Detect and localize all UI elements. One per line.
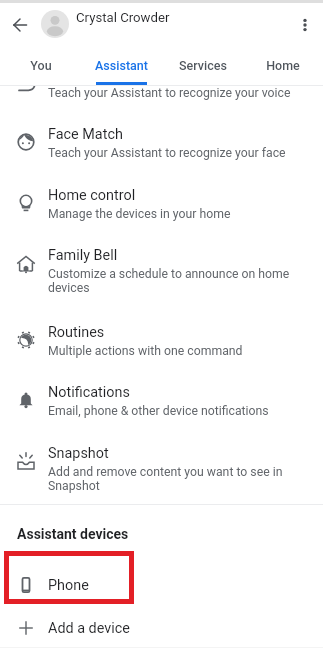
staticText: Notifications xyxy=(48,384,130,401)
staticText: Customize a schedule to announce on home… xyxy=(48,267,304,295)
button[interactable]: Add a device xyxy=(0,605,323,650)
button[interactable]: Snapshot xyxy=(0,435,323,497)
button[interactable]: Services xyxy=(162,41,243,86)
staticText: Home control xyxy=(48,187,136,204)
button[interactable]: Routines xyxy=(0,314,323,362)
staticText: Assistant xyxy=(95,58,148,73)
button[interactable]: Voice Match xyxy=(0,56,323,104)
button[interactable]: Notifications xyxy=(0,374,323,422)
button[interactable]: Assistant xyxy=(81,41,162,86)
staticText: Manage the devices in your home xyxy=(48,207,231,221)
staticText: Email, phone & other device notification… xyxy=(48,404,269,418)
staticText: Multiple actions with one command xyxy=(48,344,243,358)
button[interactable]: You xyxy=(0,41,81,86)
button[interactable]: Phone xyxy=(0,562,323,608)
staticText: You xyxy=(30,58,52,73)
staticText: Snapshot xyxy=(48,445,109,462)
staticText: Crystal Crowder xyxy=(76,10,170,25)
staticText: Face Match xyxy=(48,126,123,143)
button[interactable]: Face Match xyxy=(0,116,323,164)
button[interactable]: More options xyxy=(293,13,317,37)
staticText: Phone xyxy=(48,577,89,594)
staticText: Services xyxy=(179,58,227,73)
button[interactable]: Home control xyxy=(0,177,323,225)
staticText: Routines xyxy=(48,324,105,341)
staticText: Family Bell xyxy=(48,247,118,264)
staticText: Assistant devices xyxy=(17,526,129,542)
button[interactable]: Profile xyxy=(41,10,69,38)
staticText: Home xyxy=(266,58,300,73)
button[interactable]: Home xyxy=(243,41,323,86)
staticText: Voice Match xyxy=(48,66,128,83)
staticText: Add a device xyxy=(48,620,130,637)
button[interactable]: Family Bell xyxy=(0,237,323,299)
button[interactable]: Back xyxy=(7,12,32,37)
staticText: Teach your Assistant to recognize your v… xyxy=(48,86,291,100)
staticText: Add and remove content you want to see i… xyxy=(48,465,304,493)
staticText: Teach your Assistant to recognize your f… xyxy=(48,146,286,160)
